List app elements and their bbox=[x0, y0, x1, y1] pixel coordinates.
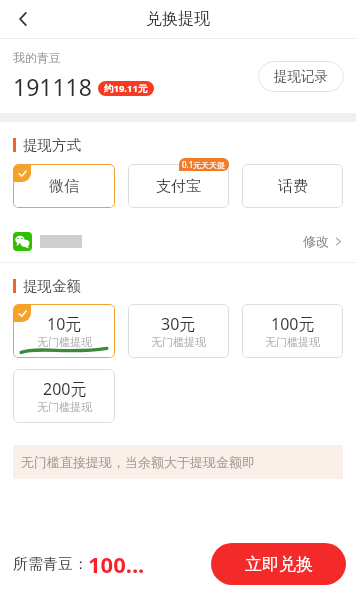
staticText: 无门槛提现 bbox=[37, 400, 92, 414]
button[interactable]: 话费 bbox=[242, 164, 343, 208]
button[interactable]: 立即兑换 bbox=[211, 543, 346, 585]
button[interactable]: Back bbox=[6, 2, 40, 36]
staticText: 支付宝 bbox=[156, 177, 201, 196]
staticText: 无门槛提现 bbox=[151, 335, 206, 349]
staticText: 约19.11元 bbox=[104, 82, 148, 95]
staticText: 话费 bbox=[278, 177, 308, 196]
staticText: 10元 bbox=[47, 313, 82, 335]
button[interactable]: 100元 bbox=[242, 304, 343, 358]
button[interactable]: 提现记录 bbox=[258, 61, 344, 92]
staticText: 无门槛提现 bbox=[265, 335, 320, 349]
staticText: 无门槛直接提现，当余额大于提现金额即 bbox=[21, 454, 255, 470]
staticText: 191118 bbox=[13, 71, 92, 102]
staticText: 微信 bbox=[49, 177, 79, 196]
button[interactable]: 30元 bbox=[128, 304, 229, 358]
staticText: 提现方式 bbox=[23, 136, 81, 154]
button[interactable]: 修改 bbox=[0, 224, 356, 258]
staticText: 30元 bbox=[161, 313, 196, 335]
staticText: 提现金额 bbox=[23, 277, 81, 295]
staticText: 修改 bbox=[303, 233, 329, 249]
staticText: 兑换提现 bbox=[146, 9, 210, 29]
button[interactable]: 200元 bbox=[13, 369, 115, 423]
button[interactable]: 支付宝 bbox=[128, 164, 229, 208]
staticText: 提现记录 bbox=[274, 68, 328, 85]
button[interactable]: 10元 bbox=[13, 304, 115, 358]
staticText: 200元 bbox=[43, 378, 87, 400]
staticText: 0.1元天天提 bbox=[182, 159, 226, 170]
button[interactable]: 微信 bbox=[13, 164, 115, 208]
staticText: 100元 bbox=[271, 313, 315, 335]
staticText: 无门槛提现 bbox=[37, 335, 92, 349]
staticText: 100... bbox=[88, 549, 145, 579]
staticText: 所需青豆： bbox=[13, 555, 88, 574]
staticText: 立即兑换 bbox=[245, 554, 313, 575]
staticText: 我的青豆 bbox=[13, 50, 61, 65]
